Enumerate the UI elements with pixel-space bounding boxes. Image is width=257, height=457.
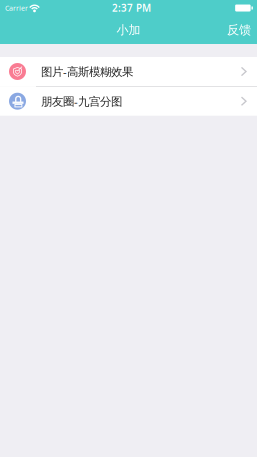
staticText: 图片-高斯模糊效果 xyxy=(41,64,133,79)
staticText: 小加 xyxy=(116,22,140,37)
staticText: 反馈 xyxy=(227,22,251,38)
button[interactable]: 朋友圈-九宫分图 xyxy=(0,87,257,116)
button[interactable]: 反馈 xyxy=(221,17,257,43)
staticText: 2:37 PM xyxy=(112,1,151,15)
staticText: 朋友圈-九宫分图 xyxy=(41,93,122,109)
staticText: Carrier xyxy=(5,3,28,13)
button[interactable]: 图片-高斯模糊效果 xyxy=(0,57,257,86)
